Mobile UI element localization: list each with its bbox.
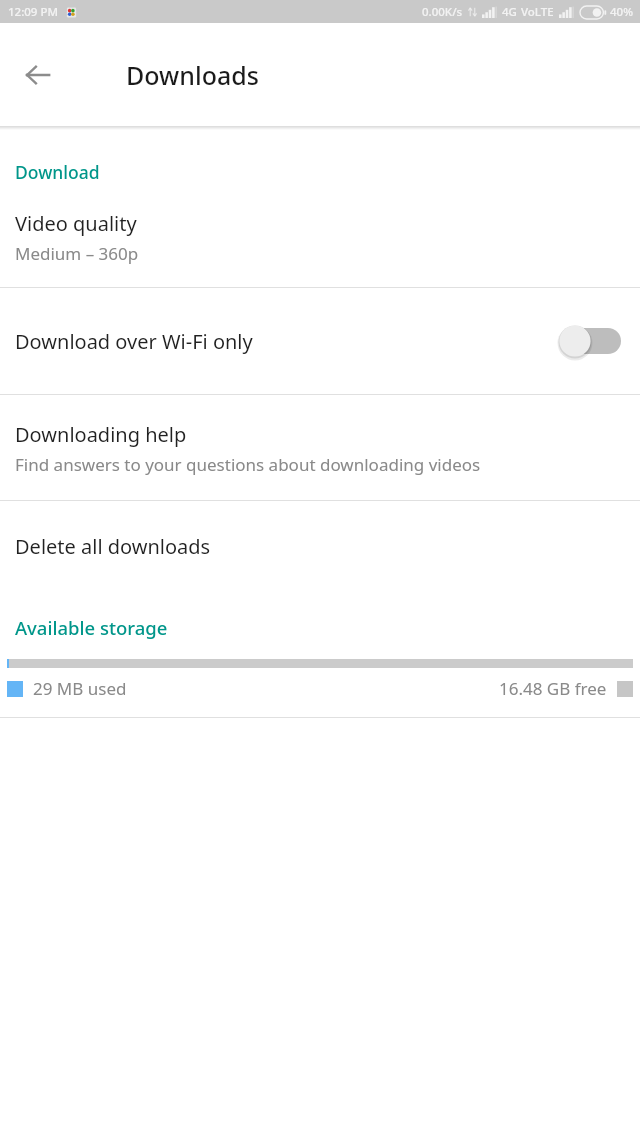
staticText: Find answers to your questions about dow…	[15, 453, 481, 476]
staticText: 4G	[502, 4, 517, 20]
button[interactable]: Downloading help	[0, 395, 640, 500]
staticText: 16.48 GB free	[499, 677, 607, 700]
button[interactable]: Video quality	[0, 184, 640, 287]
button[interactable]: Download over Wi-Fi only toggle	[555, 319, 625, 363]
staticText: 40%	[610, 4, 633, 20]
staticText: Delete all downloads	[15, 533, 211, 560]
staticText: Video quality	[15, 210, 137, 237]
button[interactable]: Delete all downloads	[0, 501, 640, 591]
staticText: Medium – 360p	[15, 242, 139, 265]
staticText: 0.00K/s	[422, 4, 463, 20]
staticText: VoLTE	[521, 4, 554, 20]
button[interactable]: Download over Wi-Fi only	[0, 288, 640, 394]
staticText: 12:09 PM	[8, 4, 59, 20]
staticText: Downloads	[126, 58, 259, 92]
staticText: Download over Wi-Fi only	[15, 328, 555, 355]
staticText: 29 MB used	[33, 677, 127, 700]
staticText: Available storage	[15, 615, 168, 640]
staticText: Download	[15, 160, 100, 184]
button[interactable]: Back	[14, 51, 62, 99]
staticText: Downloading help	[15, 421, 187, 448]
